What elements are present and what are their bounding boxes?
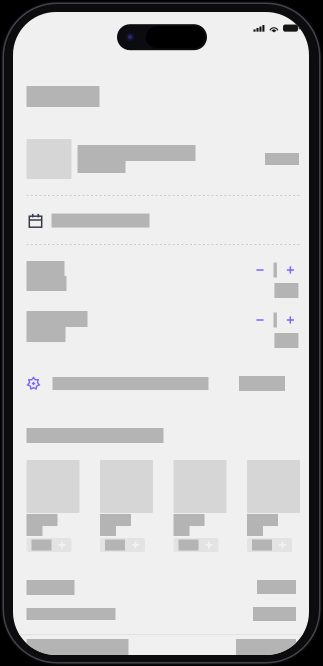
button[interactable]: Product bbox=[247, 460, 300, 552]
button[interactable]: Product bbox=[173, 460, 226, 552]
button[interactable]: Increase quantity bbox=[282, 262, 298, 278]
button[interactable]: Product bbox=[100, 460, 153, 552]
button[interactable]: Product bbox=[26, 460, 79, 552]
button[interactable]: Decrease quantity bbox=[252, 262, 268, 278]
button[interactable]: Decrease quantity bbox=[252, 312, 268, 328]
button[interactable]: Increase quantity bbox=[282, 312, 298, 328]
